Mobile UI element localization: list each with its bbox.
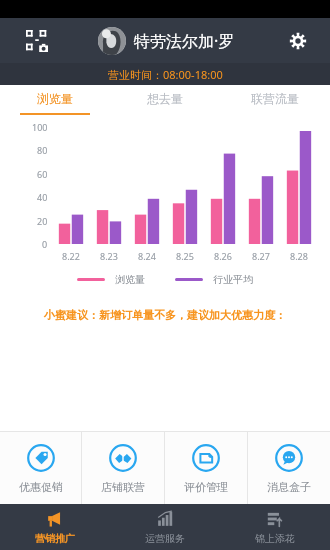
staticText: 浏览量 bbox=[37, 91, 73, 106]
staticText: 运营服务 bbox=[145, 532, 185, 545]
staticText: 8.23 bbox=[100, 250, 118, 262]
button[interactable]: 联营流量 bbox=[220, 85, 330, 121]
staticText: 20 bbox=[37, 215, 48, 227]
staticText: 60 bbox=[37, 168, 48, 180]
staticText: 8.24 bbox=[138, 250, 156, 262]
button[interactable]: 优惠促销 bbox=[0, 432, 81, 504]
staticText: 店铺联营 bbox=[101, 480, 145, 494]
staticText: 特劳法尔加·罗 bbox=[134, 30, 235, 52]
button[interactable]: 消息盒子 bbox=[248, 432, 330, 504]
staticText: 8.25 bbox=[176, 250, 194, 262]
staticText: 100 bbox=[32, 121, 48, 133]
button[interactable]: 浏览量 bbox=[0, 85, 110, 121]
button[interactable]: 店铺联营 bbox=[82, 432, 164, 504]
staticText: 8.26 bbox=[214, 250, 232, 262]
staticText: 联营流量 bbox=[251, 91, 299, 106]
staticText: 营销推广 bbox=[35, 532, 75, 545]
staticText: 评价管理 bbox=[184, 480, 228, 494]
staticText: 8.22 bbox=[62, 250, 80, 262]
staticText: 营业时间：08:00-18:00 bbox=[108, 67, 223, 82]
staticText: 8.27 bbox=[252, 250, 270, 262]
button[interactable]: 评价管理 bbox=[165, 432, 247, 504]
staticText: 想去量 bbox=[147, 91, 183, 106]
button[interactable]: 想去量 bbox=[110, 85, 220, 121]
staticText: 40 bbox=[37, 191, 48, 203]
button[interactable]: 营销推广 bbox=[0, 504, 110, 550]
staticText: 0 bbox=[42, 238, 48, 250]
staticText: 行业平均 bbox=[213, 273, 253, 286]
button[interactable]: Settings bbox=[282, 25, 314, 57]
staticText: 8.28 bbox=[290, 250, 308, 262]
button[interactable]: 运营服务 bbox=[110, 504, 220, 550]
staticText: 优惠促销 bbox=[19, 480, 63, 494]
button[interactable]: 特劳法尔加·罗 bbox=[98, 27, 235, 55]
staticText: 消息盒子 bbox=[267, 480, 311, 494]
button[interactable]: Scan QR code bbox=[22, 26, 52, 56]
staticText: 锦上添花 bbox=[255, 532, 295, 545]
staticText: 浏览量 bbox=[115, 273, 145, 286]
staticText: 80 bbox=[37, 144, 48, 156]
staticText: 小蜜建议：新增订单量不多，建议加大优惠力度： bbox=[0, 308, 330, 322]
button[interactable]: 锦上添花 bbox=[220, 504, 330, 550]
